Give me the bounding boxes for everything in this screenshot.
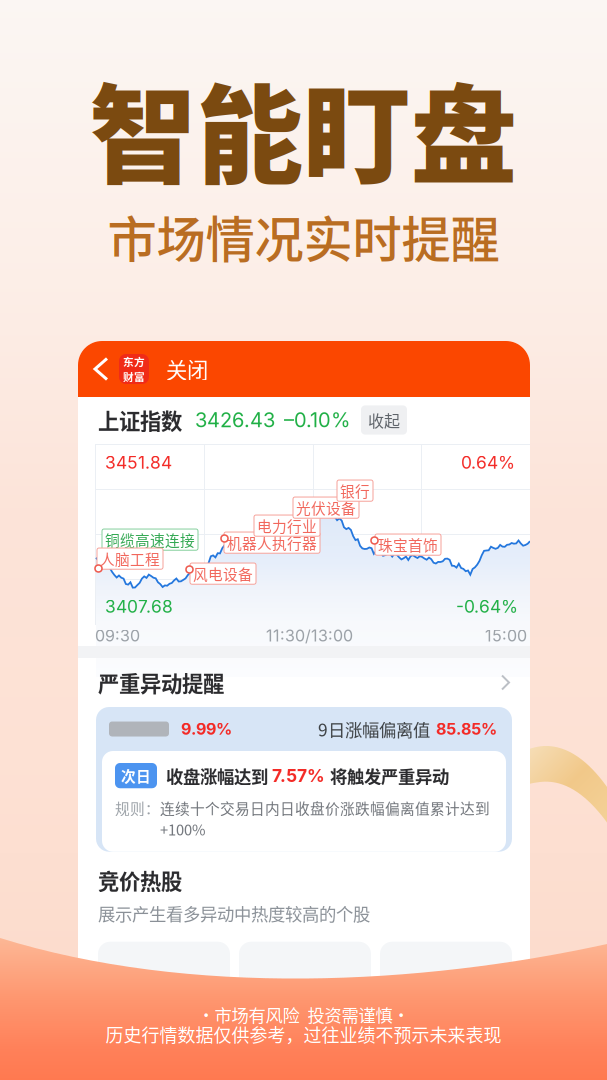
staticText: 机器人执行器 (227, 532, 317, 553)
staticText: 将触发严重异动 (330, 763, 449, 788)
staticText: 风电设备 (193, 563, 253, 584)
staticText: 市场情况实时提醒 (107, 200, 499, 272)
staticText: 0.64% (461, 452, 515, 473)
staticText: 3426.43 (195, 408, 275, 432)
staticText: 3451.84 (105, 452, 172, 473)
staticText: 展示产生看多异动中热度较高的个股 (98, 901, 370, 926)
staticText: 关闭 (166, 354, 208, 384)
button[interactable]: 收起 (361, 405, 407, 435)
staticText: 85.85% (436, 719, 497, 739)
staticText: 银行 (340, 480, 370, 501)
staticText: 9日涨幅偏离值 (318, 716, 430, 742)
staticText: 电力行业 (257, 515, 317, 536)
staticText: 光伏设备 (296, 497, 356, 518)
staticText: 09:30 (95, 626, 140, 645)
staticText: 竞价热股 (98, 865, 182, 896)
staticText: 历史行情数据仅供参考，过往业绩不预示未来表现 (105, 1021, 501, 1047)
staticText: 9.99% (181, 719, 232, 739)
staticText: 铜缆高速连接 (105, 529, 195, 550)
staticText: 11:30/13:00 (266, 626, 353, 645)
staticText: 15:00 (485, 626, 527, 645)
staticText: 珠宝首饰 (378, 534, 438, 555)
staticText: 人脑工程 (100, 548, 160, 569)
staticText: 上证指数 (98, 405, 182, 435)
staticText: 次日 (121, 765, 151, 786)
staticText: ·市场有风险 投资需谨慎· (197, 1002, 409, 1027)
staticText: 严重异动提醒 (98, 667, 224, 698)
staticText: 连续十个交易日内日收盘价涨跌幅偏离值累计达到 +100% (160, 797, 490, 840)
staticText: 财富 (123, 369, 145, 384)
staticText: 规则： (115, 797, 160, 818)
staticText: 东方 (123, 354, 145, 369)
staticText: 收起 (368, 408, 400, 432)
staticText: 收盘涨幅达到 (166, 763, 268, 788)
button[interactable]: 严重异动提醒 (78, 658, 530, 707)
staticText: 3407.68 (105, 596, 173, 617)
button[interactable]: 返回 (89, 350, 113, 387)
button[interactable]: 关闭 (149, 349, 220, 389)
staticText: –0.10% (284, 408, 350, 432)
staticText: -0.64% (456, 596, 518, 617)
staticText: 7.57% (272, 765, 325, 786)
staticText: 智能盯盘 (89, 51, 517, 205)
